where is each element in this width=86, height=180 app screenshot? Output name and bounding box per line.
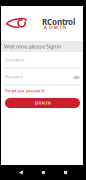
- staticText: A D M I N: [44, 24, 66, 30]
- button[interactable]: Home: [42, 171, 45, 174]
- staticText: Forgot your password?: [5, 88, 45, 93]
- staticText: Username: [5, 57, 24, 62]
- staticText: Password: [5, 74, 22, 79]
- button[interactable]: Back: [19, 170, 23, 175]
- button[interactable]: Show password: [73, 75, 80, 80]
- staticText: Welcome, please Sign in: [4, 43, 61, 50]
- button[interactable]: Forgot your password?: [5, 88, 45, 93]
- staticText: SIGN IN: [34, 100, 50, 106]
- button[interactable]: SIGN IN: [5, 98, 80, 108]
- staticText: RControl: [42, 16, 75, 27]
